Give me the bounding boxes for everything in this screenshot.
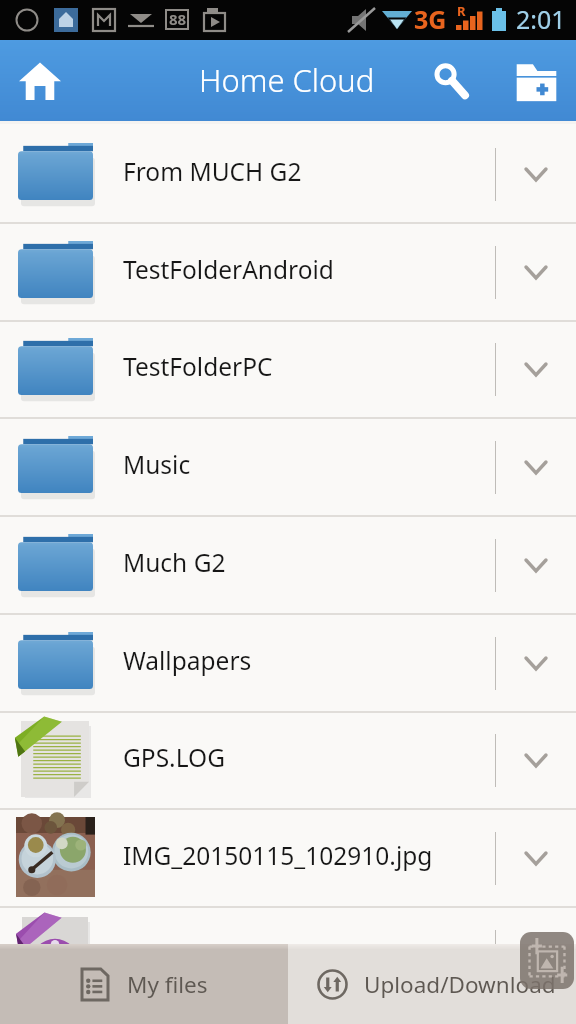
button[interactable]: VID_20150102.mp4 bbox=[0, 908, 576, 946]
button[interactable]: GPS.LOG bbox=[0, 712, 576, 808]
button[interactable]: From MUCH G2 bbox=[0, 126, 576, 222]
button[interactable]: Expand bbox=[496, 810, 576, 906]
staticText: 2:01 bbox=[516, 2, 566, 36]
button[interactable]: Wallpapers bbox=[0, 615, 576, 711]
staticText: Music bbox=[123, 448, 490, 481]
staticText: From MUCH G2 bbox=[123, 155, 490, 188]
button[interactable]: Expand bbox=[496, 419, 576, 515]
button[interactable]: Expand bbox=[496, 615, 576, 711]
button[interactable]: Expand bbox=[496, 908, 576, 946]
button[interactable]: Expand bbox=[496, 517, 576, 613]
staticText: TestFolderAndroid bbox=[123, 253, 490, 286]
button[interactable]: Search bbox=[418, 40, 480, 121]
button[interactable]: Expand bbox=[496, 126, 576, 222]
staticText: TestFolderPC bbox=[123, 350, 490, 383]
button[interactable]: TestFolderAndroid bbox=[0, 224, 576, 320]
button[interactable]: IMG_20150115_102910.jpg bbox=[0, 810, 576, 906]
button[interactable]: Home bbox=[3, 40, 79, 121]
button[interactable]: Expand bbox=[496, 224, 576, 320]
button[interactable]: My files bbox=[0, 944, 288, 1024]
button[interactable]: Music bbox=[0, 419, 576, 515]
staticText: Wallpapers bbox=[123, 644, 490, 677]
staticText: Upload/Download bbox=[364, 969, 556, 1000]
staticText: R bbox=[457, 2, 466, 20]
staticText: GPS.LOG bbox=[123, 741, 490, 774]
staticText: VID_20150102.mp4 bbox=[123, 937, 490, 946]
staticText: 3G bbox=[414, 2, 447, 36]
button[interactable]: New folder bbox=[504, 40, 568, 121]
staticText: IMG_20150115_102910.jpg bbox=[123, 839, 490, 872]
staticText: Home Cloud bbox=[199, 59, 375, 101]
staticText: 88 bbox=[169, 9, 187, 29]
button[interactable]: Upload/Download bbox=[288, 944, 576, 1024]
button[interactable]: Expand bbox=[496, 321, 576, 417]
staticText: Much G2 bbox=[123, 546, 490, 579]
button[interactable]: Expand bbox=[496, 712, 576, 808]
staticText: My files bbox=[127, 969, 208, 1000]
button[interactable]: Screen capture bbox=[520, 932, 574, 989]
button[interactable]: Much G2 bbox=[0, 517, 576, 613]
button[interactable]: TestFolderPC bbox=[0, 321, 576, 417]
